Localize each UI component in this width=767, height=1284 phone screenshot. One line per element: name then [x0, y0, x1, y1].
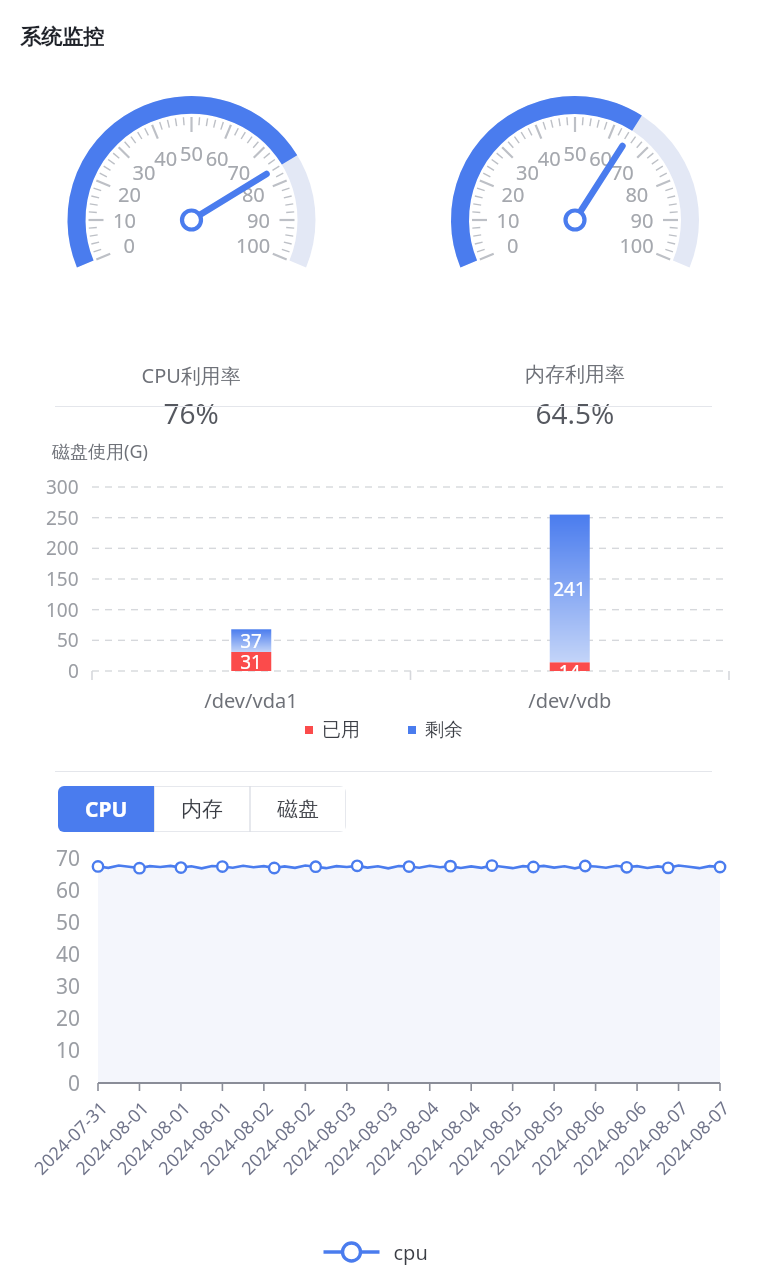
button[interactable]: 已用	[299, 712, 366, 748]
button[interactable]: CPU	[58, 786, 154, 832]
staticText: CPU	[85, 795, 128, 824]
staticText: 剩余	[425, 718, 463, 742]
staticText: 已用	[322, 718, 360, 742]
staticText: 磁盘	[277, 796, 319, 822]
button[interactable]: 内存	[154, 786, 250, 832]
button[interactable]: 磁盘	[250, 786, 346, 832]
button[interactable]: 剩余	[402, 712, 469, 748]
staticText: 内存	[181, 796, 223, 822]
staticText: 系统监控	[20, 24, 104, 50]
